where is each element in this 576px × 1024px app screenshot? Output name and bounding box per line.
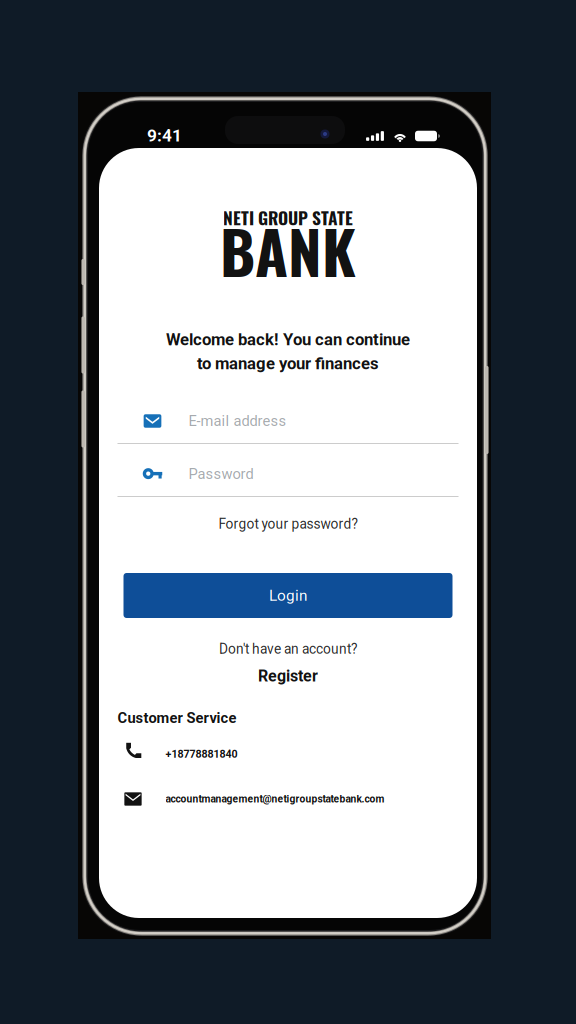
button[interactable]: Forgot your password? <box>117 517 458 531</box>
button[interactable]: Login <box>123 573 452 618</box>
button[interactable]: E-mail address <box>117 410 458 444</box>
staticText: accountmanagement@netigroupstatebank.com <box>165 793 384 805</box>
staticText: 9:41 <box>147 125 182 146</box>
button[interactable]: Password <box>117 463 458 497</box>
staticText: BANK <box>220 205 356 294</box>
staticText: to manage your finances <box>197 354 379 373</box>
staticText: Customer Service <box>117 709 236 727</box>
button[interactable]: +18778881840 <box>117 745 458 763</box>
staticText: Login <box>269 586 307 604</box>
staticText: Password <box>188 465 253 483</box>
staticText: Don't have an account? <box>219 641 357 657</box>
staticText: NETI GROUP STATE <box>223 205 353 230</box>
staticText: E-mail address <box>188 412 286 430</box>
button[interactable]: Register <box>117 668 458 684</box>
staticText: Register <box>258 667 318 685</box>
staticText: +18778881840 <box>165 748 237 760</box>
staticText: Forgot your password? <box>218 516 357 532</box>
button[interactable]: accountmanagement@netigroupstatebank.com <box>117 790 458 808</box>
staticText: Welcome back! You can continue <box>166 330 410 349</box>
